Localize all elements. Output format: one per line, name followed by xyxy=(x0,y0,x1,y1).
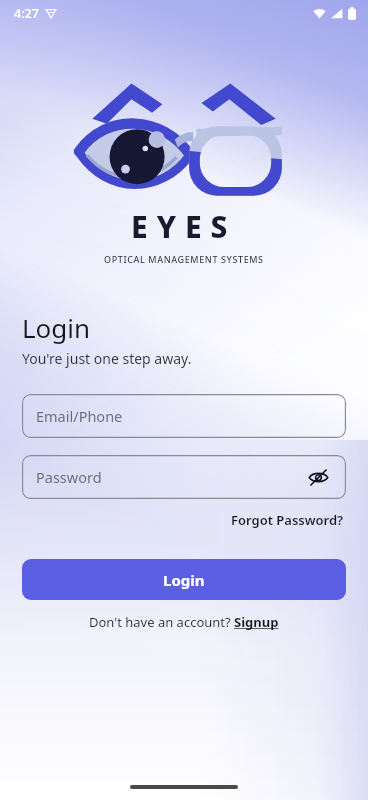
staticText: Don't have an account? Signup xyxy=(89,613,279,631)
button[interactable]: Email/Phone xyxy=(22,394,346,438)
staticText: EYES xyxy=(131,206,237,247)
staticText: Login xyxy=(22,310,91,345)
staticText: Forgot Password? xyxy=(231,511,344,529)
staticText: Login xyxy=(163,570,205,590)
button[interactable]: Forgot Password? xyxy=(229,509,346,531)
staticText: Email/Phone xyxy=(36,406,123,426)
button[interactable]: Show password xyxy=(304,463,332,491)
staticText: OPTICAL MANAGEMENT SYSTEMS xyxy=(104,253,264,265)
staticText: Password xyxy=(36,467,102,487)
button[interactable]: Login xyxy=(22,559,346,600)
button[interactable]: Password xyxy=(22,455,346,499)
staticText: You're just one step away. xyxy=(22,349,192,368)
button[interactable]: Don't have an account? Signup xyxy=(87,611,281,633)
staticText: 4:27 xyxy=(14,5,39,22)
